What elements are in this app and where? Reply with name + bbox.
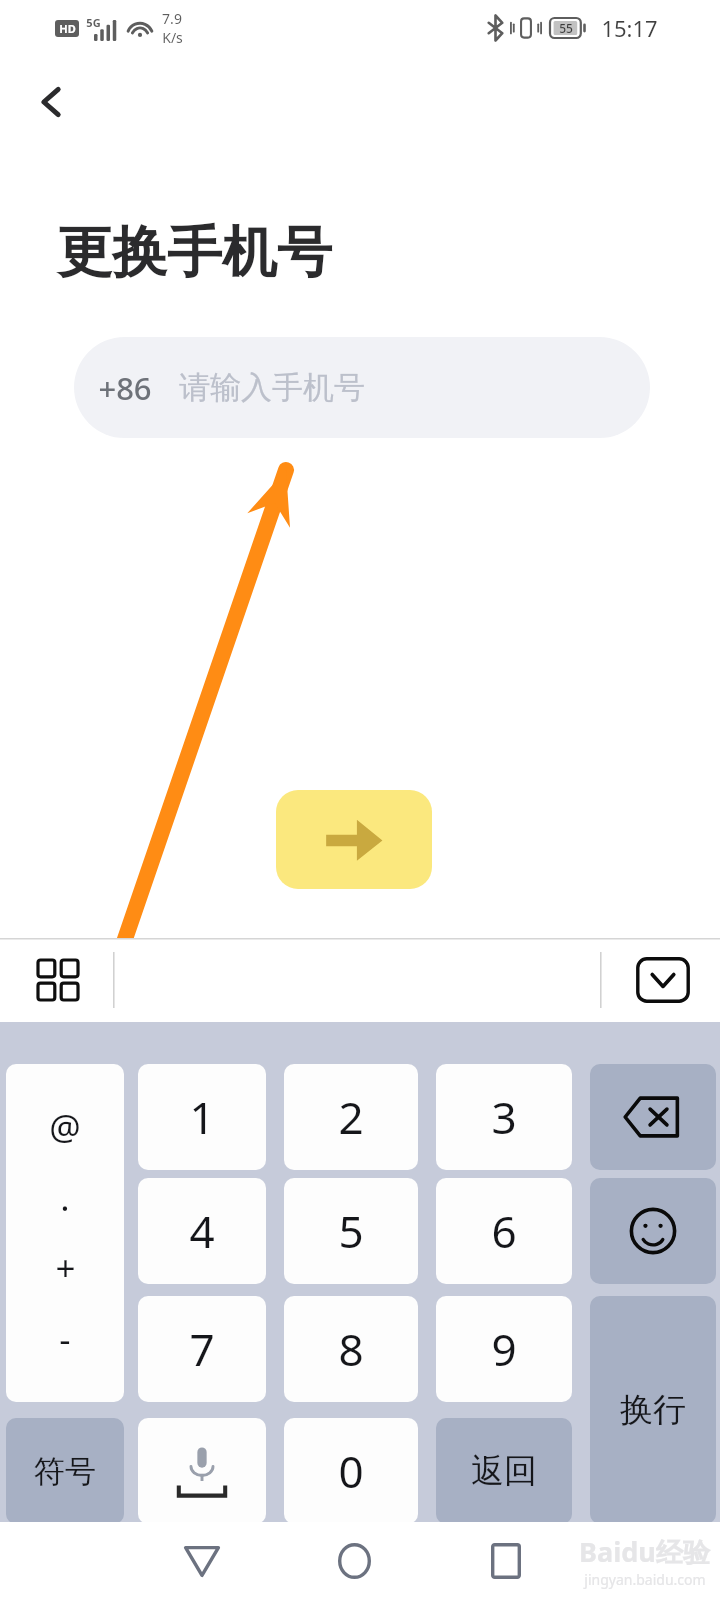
button[interactable]: Back [164, 1523, 240, 1599]
staticText: 9 [491, 1319, 517, 1379]
staticText: 更换手机号 [57, 218, 332, 287]
button[interactable]: 4 [138, 1178, 266, 1284]
staticText: 0 [338, 1441, 364, 1501]
staticText: 7 [189, 1319, 215, 1379]
button[interactable]: Recents [468, 1523, 544, 1599]
button[interactable] [590, 1064, 716, 1170]
staticText: 符号 [34, 1452, 96, 1491]
staticText: 55 [559, 20, 573, 36]
button[interactable]: 7 [138, 1296, 266, 1402]
staticText: 7.9 [162, 9, 182, 28]
staticText: K/s [162, 28, 183, 47]
staticText: 2 [338, 1087, 364, 1147]
button[interactable]: 9 [436, 1296, 572, 1402]
staticText: +86 [98, 367, 152, 409]
staticText: 5 [338, 1201, 364, 1261]
staticText: 8 [338, 1319, 364, 1379]
staticText: 换行 [620, 1389, 686, 1431]
button[interactable]: 1 [138, 1064, 266, 1170]
staticText: @ [49, 1103, 81, 1151]
button[interactable]: 5 [284, 1178, 418, 1284]
staticText: Baidu经验 [579, 1533, 710, 1570]
staticText: 4 [189, 1201, 215, 1261]
staticText: HD [59, 21, 76, 36]
button[interactable]: Back [17, 68, 85, 136]
staticText: 3 [491, 1087, 517, 1147]
staticText: . [60, 1174, 70, 1222]
staticText: 请输入手机号 [179, 368, 365, 407]
button[interactable]: 返回 [436, 1418, 572, 1524]
button[interactable]: +86 [74, 337, 650, 438]
button[interactable] [590, 1178, 716, 1284]
staticText: 返回 [471, 1450, 537, 1492]
button[interactable]: 6 [436, 1178, 572, 1284]
staticText: jingyan.baidu.com [584, 1570, 706, 1589]
staticText: - [59, 1315, 71, 1363]
button[interactable]: Hide keyboard [626, 943, 700, 1017]
button[interactable]: Next [276, 790, 432, 889]
button[interactable]: Home [316, 1523, 392, 1599]
staticText: 5G [86, 15, 101, 30]
button[interactable]: 3 [436, 1064, 572, 1170]
staticText: 15:17 [601, 13, 658, 43]
button[interactable]: 0 [284, 1418, 418, 1524]
button[interactable]: 符号 [6, 1418, 124, 1524]
staticText: 1 [189, 1087, 215, 1147]
button[interactable]: Keyboard layouts [21, 943, 95, 1017]
button[interactable]: @ [6, 1064, 124, 1402]
button[interactable]: 换行 [590, 1296, 716, 1524]
button[interactable] [138, 1418, 266, 1524]
button[interactable]: 2 [284, 1064, 418, 1170]
staticText: + [55, 1244, 76, 1292]
button[interactable]: 8 [284, 1296, 418, 1402]
staticText: 6 [491, 1201, 517, 1261]
